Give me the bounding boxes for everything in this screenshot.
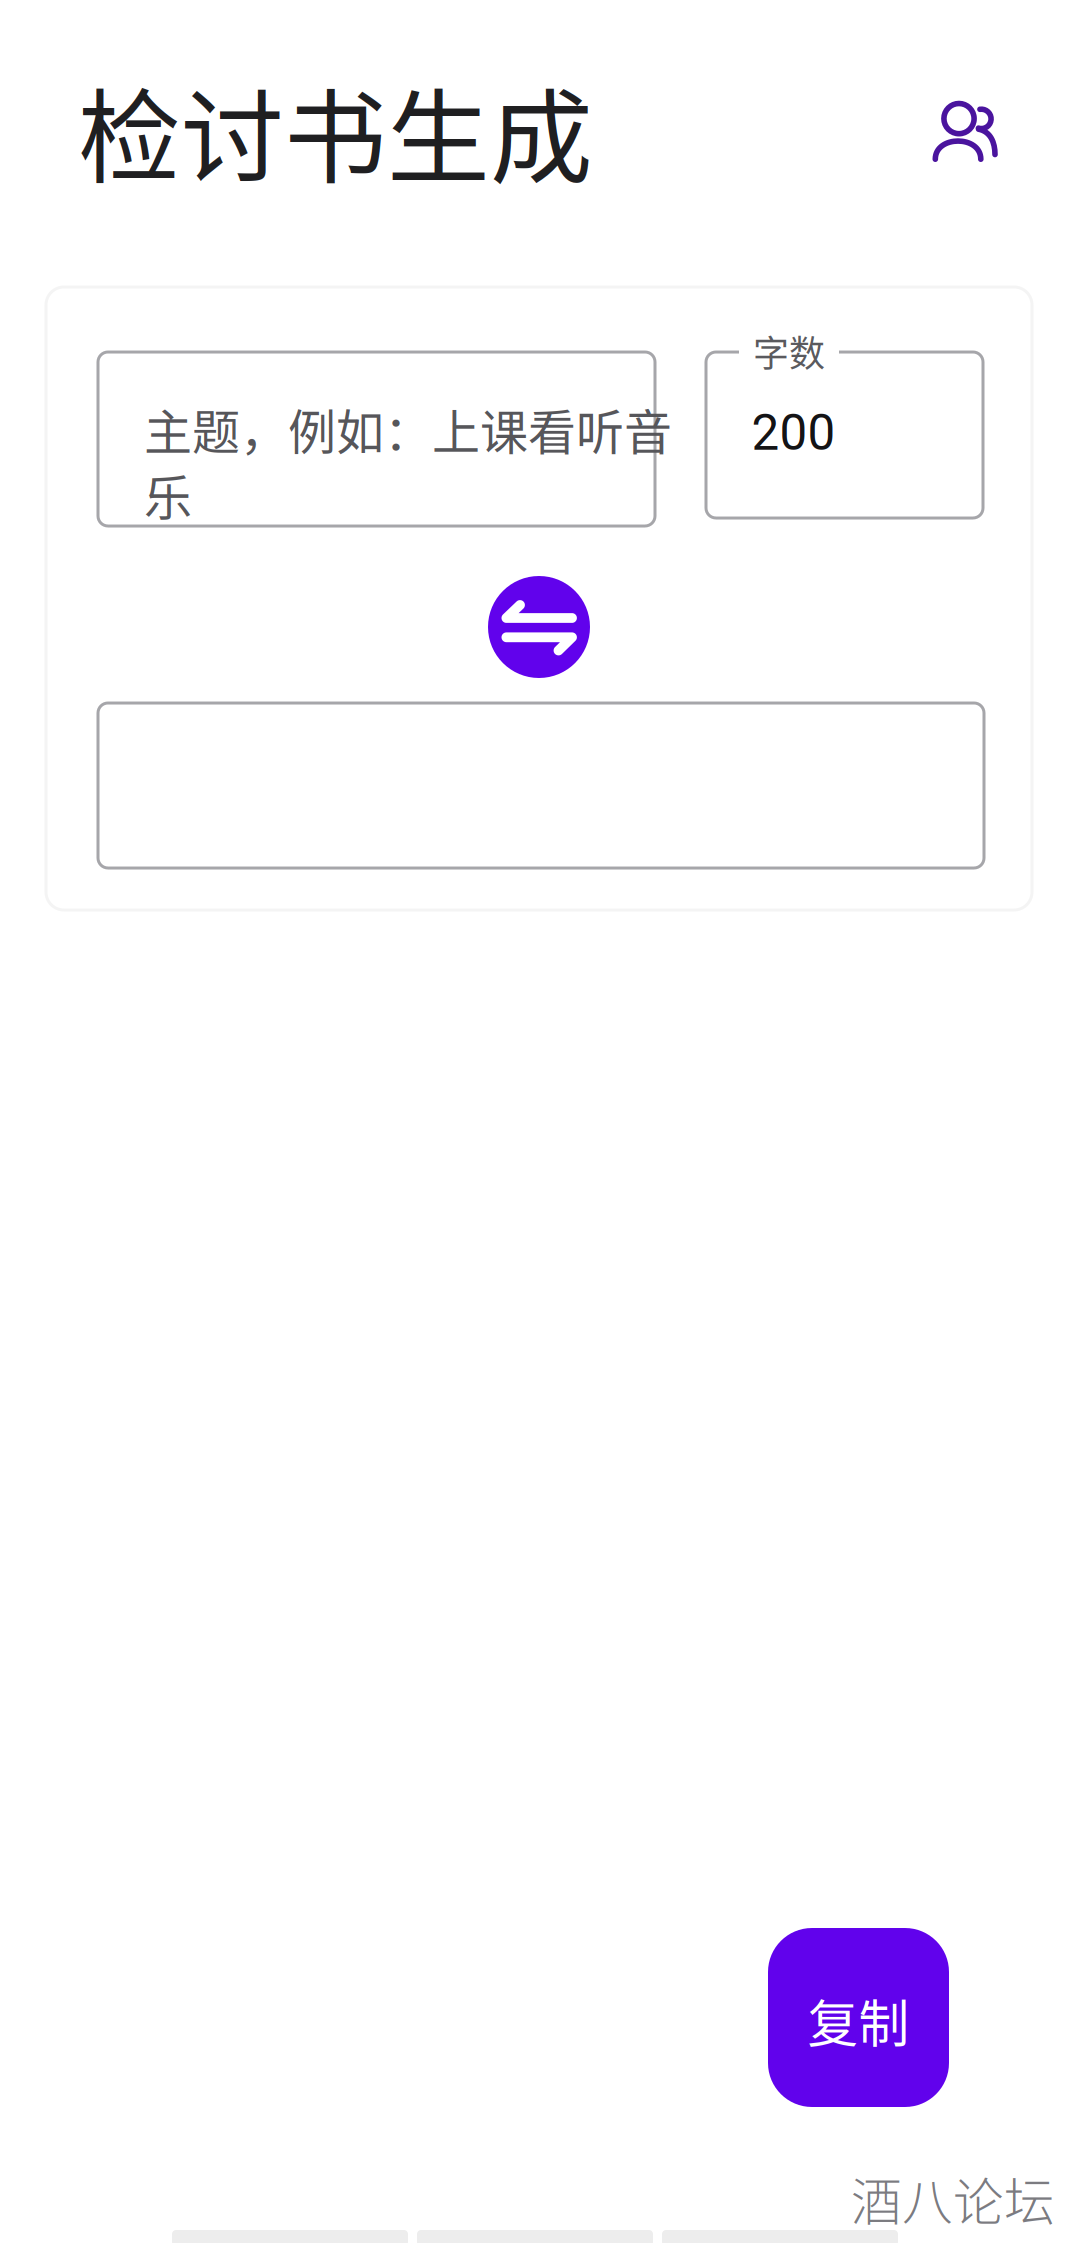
staticText: 字数 [753,325,825,377]
button[interactable]: 200 [706,352,983,518]
staticText: 检讨书生成 [78,56,593,205]
button[interactable]: Swap direction [488,576,590,678]
button[interactable]: 复制 [768,1928,949,2107]
staticText: 200 [751,404,835,462]
staticText: 复制 [807,1984,909,2057]
staticText: 酒八论坛 [851,2162,1055,2235]
button[interactable]: Generated text [98,703,984,868]
button[interactable]: 主题，例如：上课看听音乐 [98,352,655,526]
button[interactable]: Members [922,83,1012,177]
staticText: 主题，例如：上课看听音乐 [144,394,672,529]
